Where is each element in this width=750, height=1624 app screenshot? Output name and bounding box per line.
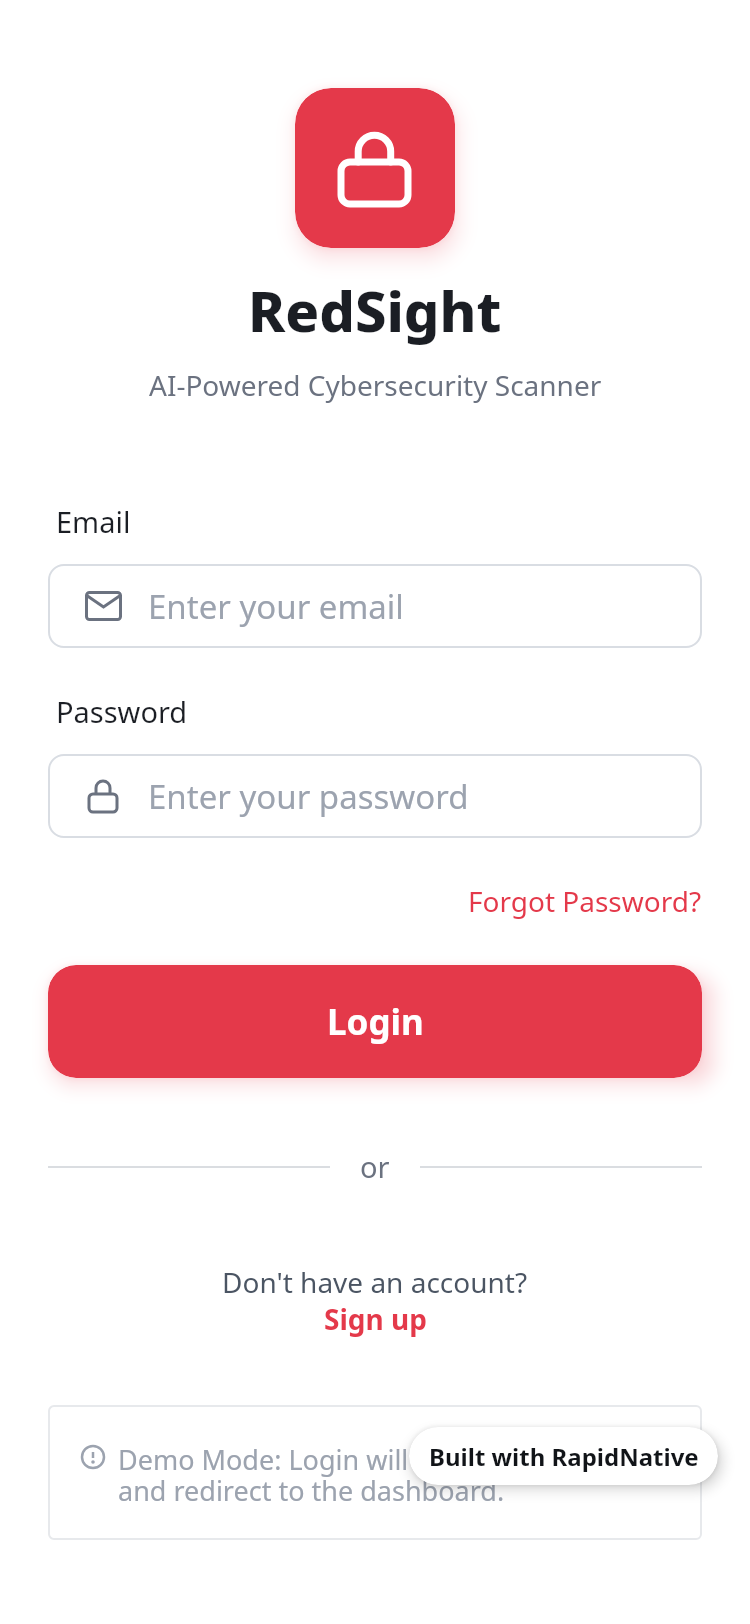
button[interactable]: Sign up (324, 1300, 427, 1338)
staticText: Built with RapidNative (429, 1440, 699, 1473)
staticText: Email (56, 502, 131, 541)
staticText: Enter your password (148, 774, 469, 819)
staticText: Don't have an account? (222, 1263, 528, 1301)
staticText: RedSight (248, 272, 502, 348)
button[interactable]: Login (48, 965, 702, 1078)
button[interactable]: Forgot Password? (468, 882, 702, 920)
staticText: AI-Powered Cybersecurity Scanner (149, 366, 602, 404)
staticText: or (360, 1147, 390, 1186)
staticText: Enter your email (148, 584, 404, 629)
button[interactable]: Built with RapidNative (409, 1427, 718, 1485)
staticText: Login (327, 998, 424, 1046)
button[interactable]: Enter your email (48, 564, 702, 648)
staticText: Demo Mode: Login will simulate success a… (118, 1441, 628, 1509)
button[interactable]: Enter your password (48, 754, 702, 838)
staticText: Password (56, 692, 188, 731)
